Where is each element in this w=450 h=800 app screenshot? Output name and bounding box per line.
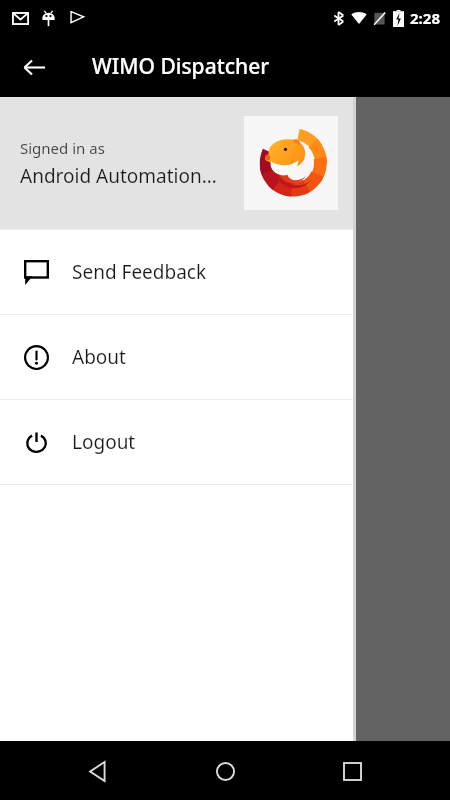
button[interactable]: Recent apps xyxy=(328,747,376,795)
staticText: Send Feedback xyxy=(72,259,207,285)
button[interactable]: Logout xyxy=(0,400,356,484)
button[interactable]: Home xyxy=(201,747,249,795)
staticText: Logout xyxy=(72,429,136,455)
button[interactable]: About xyxy=(0,315,356,399)
button[interactable]: Send Feedback xyxy=(0,230,356,314)
staticText: 2:28 xyxy=(410,8,440,28)
staticText: Android Automation… xyxy=(20,163,217,189)
button[interactable]: Back xyxy=(74,747,122,795)
staticText: Signed in as xyxy=(20,138,105,158)
button[interactable]: Back xyxy=(10,43,58,91)
staticText: WIMO Dispatcher xyxy=(92,52,270,81)
button[interactable]: Signed in as xyxy=(0,97,356,229)
staticText: About xyxy=(72,344,126,370)
